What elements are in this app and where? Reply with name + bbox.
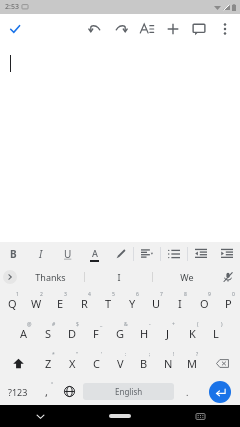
button[interactable]: ?123 bbox=[0, 378, 35, 405]
button[interactable]: C bbox=[84, 348, 108, 378]
button[interactable]: B bbox=[132, 348, 156, 378]
button[interactable]: Redo bbox=[108, 16, 134, 42]
button[interactable]: K bbox=[180, 318, 204, 348]
staticText: I bbox=[39, 247, 43, 261]
button[interactable]: Voice input off bbox=[220, 269, 236, 285]
button[interactable]: S bbox=[36, 318, 60, 348]
button[interactable]: Home bbox=[80, 405, 160, 427]
button[interactable]: Undo bbox=[82, 16, 108, 42]
staticText: G bbox=[116, 326, 125, 341]
staticText: Q bbox=[8, 296, 17, 311]
button[interactable]: O bbox=[192, 288, 216, 318]
button[interactable]: Increase indent bbox=[214, 242, 240, 266]
button[interactable]: Expand toolbar bbox=[3, 270, 17, 284]
button[interactable]: W bbox=[24, 288, 48, 318]
staticText: H bbox=[140, 326, 149, 341]
button[interactable]: P bbox=[216, 288, 240, 318]
staticText: M bbox=[187, 356, 197, 371]
button[interactable]: Highlight bbox=[107, 242, 133, 266]
button[interactable]: D bbox=[60, 318, 84, 348]
button[interactable]: Bold bbox=[0, 242, 27, 266]
button[interactable]: We bbox=[153, 266, 220, 288]
staticText: @ bbox=[27, 321, 32, 328]
button[interactable] bbox=[0, 44, 240, 242]
staticText: ) bbox=[221, 321, 223, 328]
button[interactable]: . bbox=[176, 378, 199, 405]
staticText: ' bbox=[101, 351, 103, 358]
staticText: 1 bbox=[16, 291, 19, 298]
button[interactable]: U bbox=[144, 288, 168, 318]
button[interactable]: Backspace bbox=[204, 348, 240, 378]
button[interactable]: E bbox=[48, 288, 72, 318]
staticText: 9 bbox=[208, 291, 211, 298]
button[interactable]: R bbox=[72, 288, 96, 318]
staticText: English bbox=[115, 386, 143, 397]
staticText: U bbox=[152, 296, 161, 311]
staticText: N bbox=[164, 356, 173, 371]
button[interactable]: F bbox=[84, 318, 108, 348]
button[interactable]: M bbox=[180, 348, 204, 378]
staticText: L bbox=[213, 326, 219, 341]
button[interactable]: H bbox=[132, 318, 156, 348]
button[interactable]: A bbox=[12, 318, 36, 348]
button[interactable]: Shift bbox=[0, 348, 36, 378]
button[interactable]: Hide keyboard bbox=[0, 405, 80, 427]
staticText: ° bbox=[51, 381, 54, 388]
button[interactable]: Insert bbox=[160, 16, 186, 42]
button[interactable]: English bbox=[83, 383, 174, 400]
button[interactable]: Text color bbox=[81, 242, 107, 266]
button[interactable]: Done bbox=[4, 18, 26, 40]
staticText: 5 bbox=[112, 291, 115, 298]
staticText: _ bbox=[100, 321, 103, 328]
button[interactable]: X bbox=[60, 348, 84, 378]
button[interactable]: N bbox=[156, 348, 180, 378]
button[interactable]: T bbox=[96, 288, 120, 318]
staticText: + bbox=[172, 321, 175, 328]
staticText: " bbox=[76, 351, 79, 358]
staticText: * bbox=[52, 351, 55, 358]
button[interactable]: Y bbox=[120, 288, 144, 318]
staticText: O bbox=[200, 296, 209, 311]
button[interactable]: Underline bbox=[54, 242, 81, 266]
button[interactable]: Decrease indent bbox=[188, 242, 214, 266]
button[interactable]: , bbox=[35, 378, 58, 405]
staticText: R bbox=[81, 296, 88, 311]
staticText: 7 bbox=[160, 291, 163, 298]
staticText: We bbox=[180, 271, 194, 283]
button[interactable]: Alignment bbox=[134, 242, 160, 266]
staticText: F bbox=[93, 326, 99, 341]
staticText: : bbox=[125, 351, 127, 358]
button[interactable]: Bulleted list bbox=[161, 242, 187, 266]
button[interactable]: V bbox=[108, 348, 132, 378]
staticText: - bbox=[149, 321, 151, 328]
staticText: Y bbox=[129, 296, 136, 311]
staticText: U bbox=[64, 247, 72, 261]
button[interactable]: Q bbox=[0, 288, 24, 318]
staticText: # bbox=[52, 321, 56, 328]
button[interactable]: Switch keyboard bbox=[160, 405, 240, 427]
staticText: 2 bbox=[40, 291, 43, 298]
button[interactable]: Enter bbox=[209, 381, 231, 403]
button[interactable]: Change language bbox=[58, 378, 81, 405]
button[interactable]: I bbox=[168, 288, 192, 318]
staticText: 4 bbox=[88, 291, 91, 298]
staticText: W bbox=[31, 296, 42, 311]
staticText: A bbox=[92, 247, 98, 259]
button[interactable]: I bbox=[85, 266, 152, 288]
button[interactable]: Text formatting bbox=[134, 16, 160, 42]
button[interactable]: J bbox=[156, 318, 180, 348]
button[interactable]: Z bbox=[36, 348, 60, 378]
button[interactable]: Italic bbox=[27, 242, 54, 266]
button[interactable]: Comments bbox=[186, 16, 212, 42]
staticText: B bbox=[10, 247, 17, 261]
staticText: 3 bbox=[64, 291, 67, 298]
staticText: ?123 bbox=[8, 386, 28, 398]
button[interactable]: L bbox=[204, 318, 228, 348]
button[interactable]: More options bbox=[212, 16, 238, 42]
staticText: X bbox=[69, 356, 76, 371]
staticText: V bbox=[117, 356, 124, 371]
button[interactable]: G bbox=[108, 318, 132, 348]
staticText: S bbox=[45, 326, 52, 341]
button[interactable]: Thanks bbox=[17, 266, 84, 288]
staticText: D bbox=[68, 326, 77, 341]
